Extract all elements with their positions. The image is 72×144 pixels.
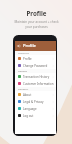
staticText: About <box>23 93 32 97</box>
button[interactable]: Back <box>15 41 56 51</box>
button[interactable]: Customer Information <box>15 80 56 87</box>
staticText: Language <box>23 107 37 111</box>
staticText: Profile <box>26 9 47 17</box>
other: Back <box>17 44 21 48</box>
staticText: Transaction History <box>23 75 50 79</box>
button[interactable]: Language <box>15 105 56 112</box>
staticText: ACCOUNT <box>18 52 29 55</box>
staticText: Log out <box>23 114 34 118</box>
staticText: Change Password <box>23 64 48 68</box>
button[interactable]: Transaction History <box>15 73 56 80</box>
button[interactable]: Log out <box>15 112 56 119</box>
staticText: Profile <box>23 57 32 61</box>
staticText: Profile <box>23 43 36 49</box>
button[interactable]: Change Password <box>15 62 56 69</box>
button[interactable]: Legal & Privacy <box>15 98 56 105</box>
staticText: Customer Information <box>23 82 54 86</box>
staticText: ORDERS <box>18 70 27 73</box>
staticText: your purchases <box>25 25 48 29</box>
staticText: Legal & Privacy <box>23 100 44 104</box>
button[interactable]: About <box>15 91 56 98</box>
staticText: Maintain your account + check <box>14 20 59 24</box>
button[interactable]: Profile <box>15 55 56 62</box>
staticText: GENERAL <box>18 88 29 91</box>
